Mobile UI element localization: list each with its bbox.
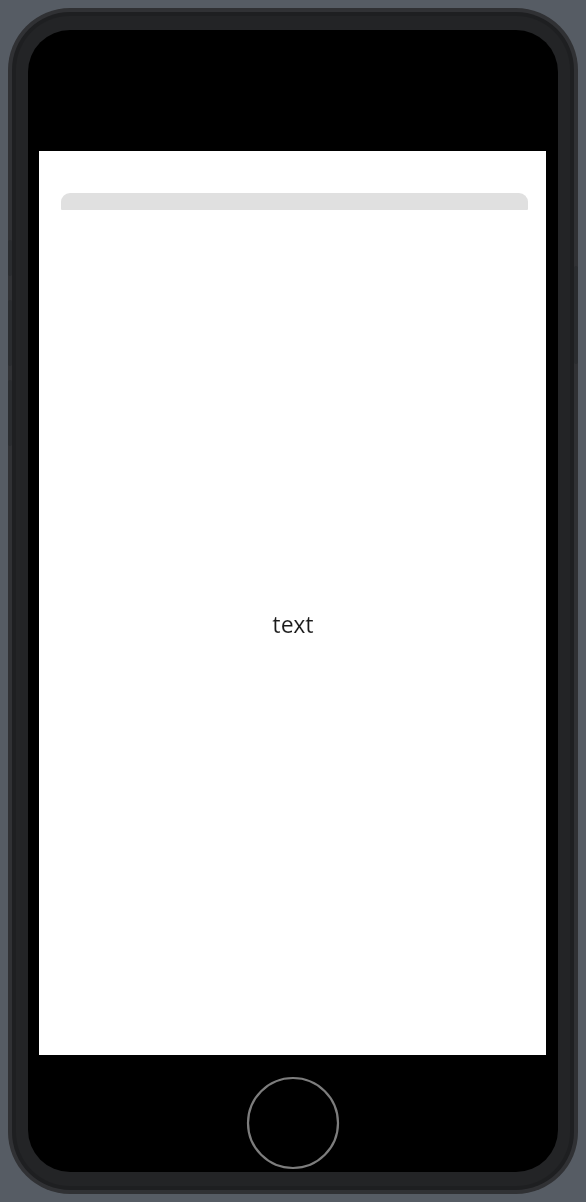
staticText: text: [272, 608, 314, 639]
button[interactable]: Home: [246, 1076, 340, 1170]
button[interactable]: text: [39, 606, 546, 640]
